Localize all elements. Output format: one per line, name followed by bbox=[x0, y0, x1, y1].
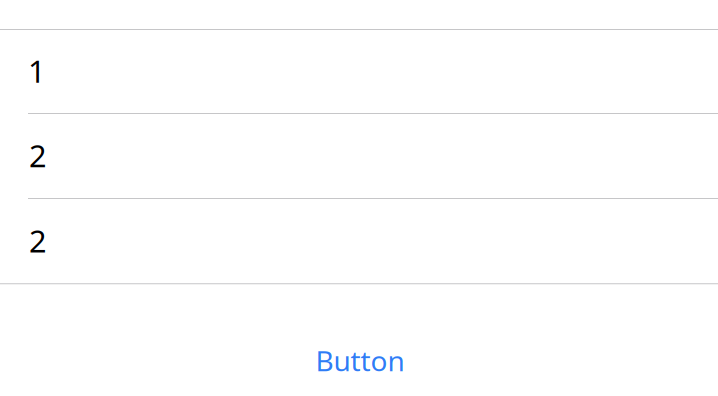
staticText: 2 bbox=[29, 135, 47, 176]
button[interactable]: 1 bbox=[0, 30, 718, 113]
staticText: 2 bbox=[29, 220, 47, 261]
staticText: Button bbox=[315, 342, 404, 379]
button[interactable]: Button bbox=[0, 342, 718, 379]
button[interactable]: 2 bbox=[0, 114, 718, 198]
staticText: 1 bbox=[28, 50, 46, 91]
button[interactable]: 2 bbox=[0, 199, 718, 283]
